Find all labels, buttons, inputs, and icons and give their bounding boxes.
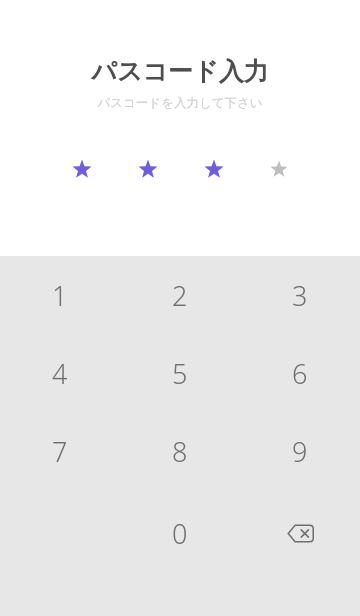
button[interactable]: 3	[240, 256, 360, 334]
button[interactable]: 8	[120, 412, 240, 490]
button[interactable]: 9	[240, 412, 360, 490]
button[interactable]: 6	[240, 334, 360, 412]
staticText: 6	[292, 355, 308, 392]
staticText: 7	[52, 433, 68, 470]
button[interactable]: 7	[0, 412, 120, 490]
button[interactable]: 0	[120, 490, 240, 576]
button[interactable]: 4	[0, 334, 120, 412]
staticText: 2	[172, 277, 188, 314]
button[interactable]: 2	[120, 256, 240, 334]
staticText: 9	[292, 433, 308, 470]
staticText: 3	[292, 277, 308, 314]
button[interactable]: Backspace	[240, 490, 360, 576]
staticText: パスコード入力	[91, 56, 269, 87]
button[interactable]: 1	[0, 256, 120, 334]
staticText: 5	[172, 355, 188, 392]
staticText: 8	[172, 433, 188, 470]
staticText: パスコードを入力して下さい	[97, 95, 263, 111]
staticText: 0	[172, 515, 188, 552]
button[interactable]: 5	[120, 334, 240, 412]
staticText: 4	[52, 355, 68, 392]
staticText: 1	[52, 277, 68, 314]
